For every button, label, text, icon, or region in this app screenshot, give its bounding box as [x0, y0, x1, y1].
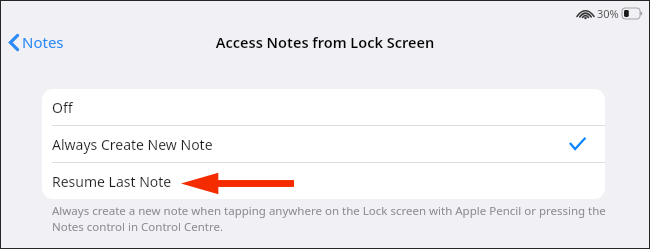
- staticText: Notes control in Control Centre.: [52, 219, 224, 235]
- button[interactable]: Resume Last Note: [42, 163, 605, 199]
- button[interactable]: Always Create New Note: [42, 126, 605, 162]
- staticText: Always create a new note when tapping an…: [52, 203, 606, 219]
- other: Annotation arrow pointing to Resume Last…: [181, 172, 294, 195]
- staticText: Off: [52, 98, 73, 117]
- other: Wi-Fi: [579, 9, 592, 19]
- other: Battery 30 percent: [622, 8, 643, 19]
- staticText: Notes: [22, 32, 64, 52]
- button[interactable]: Off: [42, 89, 605, 125]
- button[interactable]: Notes: [5, 29, 68, 55]
- staticText: 30%: [597, 6, 619, 21]
- staticText: Resume Last Note: [52, 172, 172, 191]
- staticText: Always Create New Note: [52, 135, 213, 154]
- staticText: Access Notes from Lock Screen: [0, 32, 650, 52]
